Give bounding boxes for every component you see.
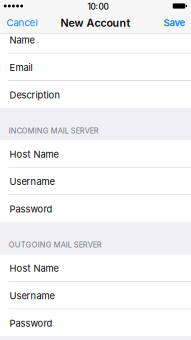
button[interactable]: Host Name bbox=[0, 140, 191, 167]
staticText: New Account bbox=[60, 16, 130, 29]
staticText: Cancel bbox=[7, 17, 38, 29]
staticText: INCOMING MAIL SERVER bbox=[9, 126, 99, 135]
staticText: Password bbox=[9, 318, 52, 329]
button[interactable]: Save bbox=[158, 12, 191, 33]
button[interactable]: Cancel bbox=[0, 12, 43, 33]
staticText: Username bbox=[9, 290, 54, 301]
button[interactable]: Email bbox=[0, 54, 191, 80]
button[interactable]: Username bbox=[0, 282, 191, 309]
staticText: 10:00 bbox=[87, 2, 108, 12]
button[interactable]: Password bbox=[0, 309, 191, 336]
staticText: Description bbox=[9, 89, 60, 101]
button[interactable]: Password bbox=[0, 195, 191, 222]
button[interactable]: Name bbox=[0, 26, 191, 53]
staticText: Email bbox=[9, 62, 32, 73]
button[interactable]: Description bbox=[0, 81, 191, 108]
staticText: Save bbox=[163, 17, 185, 29]
staticText: Password bbox=[9, 203, 52, 215]
button[interactable]: Username bbox=[0, 168, 191, 195]
staticText: OUTGOING MAIL SERVER bbox=[9, 240, 102, 249]
button[interactable]: Host Name bbox=[0, 254, 191, 281]
staticText: Name bbox=[9, 34, 34, 46]
staticText: Host Name bbox=[9, 149, 58, 160]
staticText: Username bbox=[9, 176, 54, 187]
staticText: Host Name bbox=[9, 263, 58, 274]
